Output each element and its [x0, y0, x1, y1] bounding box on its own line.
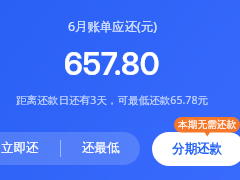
staticText: 657.80 — [64, 45, 160, 83]
staticText: 距离还款日还有3天，可最低还款65.78元 — [16, 93, 209, 107]
staticText: 还最低 — [82, 140, 120, 156]
staticText: 本期无需还款 — [178, 119, 237, 131]
staticText: 6月账单应还(元) — [68, 18, 157, 35]
staticText: 立即还 — [1, 140, 39, 156]
staticText: 分期还款 — [172, 141, 222, 157]
button[interactable]: 立即还 — [0, 132, 60, 165]
button[interactable]: 分期还款 — [152, 132, 240, 166]
button[interactable]: 还最低 — [61, 132, 140, 165]
